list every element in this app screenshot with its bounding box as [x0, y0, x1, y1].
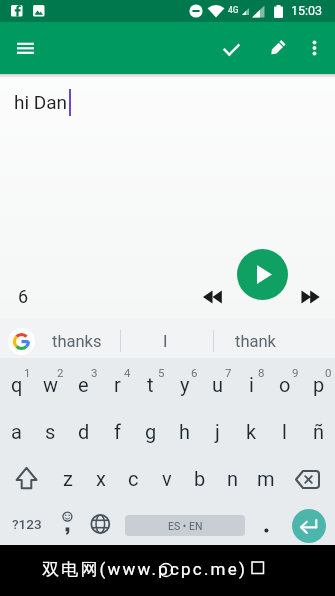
button[interactable]: r — [101, 362, 134, 406]
button[interactable]: I — [125, 325, 205, 357]
staticText: r — [114, 373, 121, 396]
staticText: b — [194, 467, 206, 490]
button[interactable]: s — [34, 409, 67, 453]
button[interactable]: d — [67, 409, 100, 453]
button[interactable]: l — [268, 409, 301, 453]
staticText: w — [43, 373, 59, 396]
button[interactable] — [52, 506, 82, 538]
staticText: x — [96, 467, 106, 490]
staticText: o — [279, 373, 291, 396]
button[interactable]: t — [134, 362, 167, 406]
staticText: d — [78, 420, 90, 443]
button[interactable] — [8, 328, 35, 355]
staticText: 3 — [91, 366, 98, 379]
staticText: 4G — [228, 5, 239, 15]
button[interactable]: m — [249, 456, 282, 500]
button[interactable] — [237, 249, 288, 300]
button[interactable]: e — [67, 362, 100, 406]
staticText: y — [180, 373, 190, 396]
staticText: q — [11, 373, 23, 396]
staticText: 8 — [258, 366, 265, 379]
button[interactable]: v — [150, 456, 183, 500]
staticText: 15:03 — [291, 3, 323, 18]
staticText: i — [249, 373, 254, 396]
button[interactable]: ñ — [302, 409, 335, 453]
staticText: 双电网(www.pcpc.me) — [42, 559, 248, 580]
button[interactable]: u — [201, 362, 234, 406]
button[interactable]: n — [216, 456, 249, 500]
staticText: z — [63, 467, 73, 490]
staticText: 5 — [158, 366, 165, 379]
button[interactable]: f — [101, 409, 134, 453]
staticText: j — [215, 420, 220, 443]
staticText: h — [179, 420, 191, 443]
staticText: g — [145, 420, 157, 443]
button[interactable] — [300, 33, 330, 65]
staticText: ES • EN — [168, 520, 203, 532]
staticText: p — [313, 373, 325, 396]
staticText: 0 — [325, 366, 332, 379]
staticText: 2 — [57, 366, 64, 379]
button[interactable]: c — [117, 456, 150, 500]
staticText: u — [212, 373, 224, 396]
staticText: k — [246, 420, 257, 443]
button[interactable] — [215, 33, 247, 65]
button[interactable]: g — [134, 409, 167, 453]
staticText: ñ — [313, 420, 325, 443]
button[interactable]: y — [168, 362, 201, 406]
button[interactable]: z — [51, 456, 84, 500]
button[interactable] — [9, 32, 41, 64]
staticText: 6 — [191, 366, 198, 379]
button[interactable]: thanks — [37, 325, 117, 357]
button[interactable]: j — [201, 409, 234, 453]
button[interactable] — [295, 283, 327, 311]
button[interactable]: ES • EN — [125, 515, 245, 536]
button[interactable] — [292, 509, 326, 543]
button[interactable] — [196, 283, 228, 311]
button[interactable]: k — [235, 409, 268, 453]
button[interactable] — [88, 510, 113, 538]
staticText: 4 — [124, 366, 131, 379]
staticText: 1 — [24, 366, 31, 379]
button[interactable]: x — [84, 456, 117, 500]
staticText: thank — [235, 332, 276, 351]
button[interactable] — [255, 516, 277, 542]
button[interactable]: ?123 — [12, 516, 43, 534]
staticText: a — [11, 420, 22, 443]
button[interactable] — [261, 33, 293, 65]
button[interactable]: i — [235, 362, 268, 406]
button[interactable] — [286, 456, 326, 500]
staticText: hi Dan — [14, 91, 68, 113]
button[interactable]: a — [0, 409, 33, 453]
button[interactable]: b — [183, 456, 216, 500]
button[interactable] — [5, 456, 45, 500]
button[interactable]: q — [0, 362, 33, 406]
staticText: n — [227, 467, 239, 490]
staticText: t — [147, 373, 154, 396]
button[interactable]: h — [168, 409, 201, 453]
button[interactable]: o — [268, 362, 301, 406]
button[interactable]: thank — [215, 325, 295, 357]
staticText: 6 — [18, 286, 29, 307]
staticText: m — [257, 467, 275, 490]
staticText: thanks — [52, 332, 102, 351]
staticText: I — [163, 332, 168, 351]
staticText: f — [114, 420, 121, 443]
staticText: s — [45, 420, 56, 443]
button[interactable]: w — [34, 362, 67, 406]
staticText: e — [78, 373, 89, 396]
staticText: v — [162, 467, 172, 490]
staticText: 9 — [292, 366, 299, 379]
staticText: l — [282, 420, 287, 443]
staticText: 7 — [225, 366, 232, 379]
button[interactable]: p — [302, 362, 335, 406]
staticText: c — [128, 467, 139, 490]
